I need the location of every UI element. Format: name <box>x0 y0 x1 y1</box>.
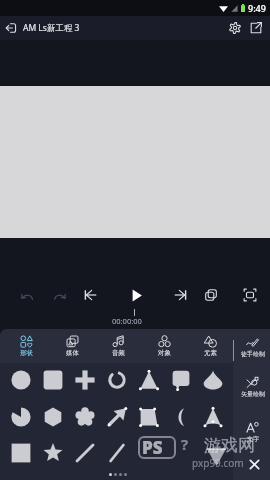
button[interactable]: drop <box>199 366 227 394</box>
staticText: 9:49 <box>248 2 266 14</box>
staticText: pxp99.com <box>192 456 244 470</box>
staticText: 元素 <box>204 349 217 357</box>
button[interactable]: Export <box>245 17 267 39</box>
button[interactable]: 音频 <box>95 329 141 363</box>
button[interactable]: arc <box>103 366 131 394</box>
staticText: ? <box>181 434 189 454</box>
button[interactable]: star5 <box>71 403 99 431</box>
staticText: 文字 <box>247 435 259 443</box>
button[interactable]: 元素 <box>187 329 233 363</box>
staticText: PS <box>142 436 163 459</box>
button[interactable]: Undo <box>15 282 41 308</box>
staticText: 对象 <box>158 349 171 357</box>
button[interactable]: line2 <box>103 439 131 467</box>
button[interactable]: line <box>71 439 99 467</box>
staticText: 媒体 <box>66 349 79 357</box>
button[interactable]: 对象 <box>141 329 187 363</box>
button[interactable]: 矢量绘制 <box>235 376 270 398</box>
button[interactable]: plus <box>71 366 99 394</box>
button[interactable]: spire <box>199 403 227 431</box>
button[interactable]: circle <box>7 366 35 394</box>
button[interactable]: bubble <box>167 366 195 394</box>
staticText: 形状 <box>20 349 33 357</box>
button[interactable]: Fit to screen <box>237 282 263 308</box>
staticText: AM Ls新工程 3 <box>23 22 80 34</box>
button[interactable]: Close <box>246 456 262 472</box>
button[interactable]: 形状 <box>3 329 49 363</box>
button[interactable]: 媒体 <box>49 329 95 363</box>
button[interactable]: Skip to start <box>77 282 103 308</box>
staticText: 矢量绘制 <box>241 390 265 398</box>
button[interactable]: hex <box>39 403 67 431</box>
button[interactable]: star <box>39 439 67 467</box>
button[interactable]: Redo <box>46 282 72 308</box>
button[interactable]: Loop <box>198 282 224 308</box>
button[interactable]: trap <box>135 403 163 431</box>
button[interactable]: cone <box>135 366 163 394</box>
button[interactable]: arrow <box>103 403 131 431</box>
staticText: 徒手绘制 <box>241 350 265 358</box>
staticText: 音频 <box>112 349 125 357</box>
button[interactable]: pie <box>7 403 35 431</box>
staticText: 00:00:00 <box>112 316 142 326</box>
button[interactable]: Skip to end <box>168 282 194 308</box>
button[interactable]: 文字 <box>235 421 270 443</box>
button[interactable]: 徒手绘制 <box>235 336 270 358</box>
button[interactable]: Settings <box>224 17 246 39</box>
button[interactable]: square <box>7 439 35 467</box>
button[interactable]: rsquare <box>39 366 67 394</box>
button[interactable]: Play <box>123 282 149 308</box>
button[interactable]: moon <box>167 403 195 431</box>
button[interactable]: Back <box>0 17 22 39</box>
staticText: 游戏网 <box>204 435 255 456</box>
